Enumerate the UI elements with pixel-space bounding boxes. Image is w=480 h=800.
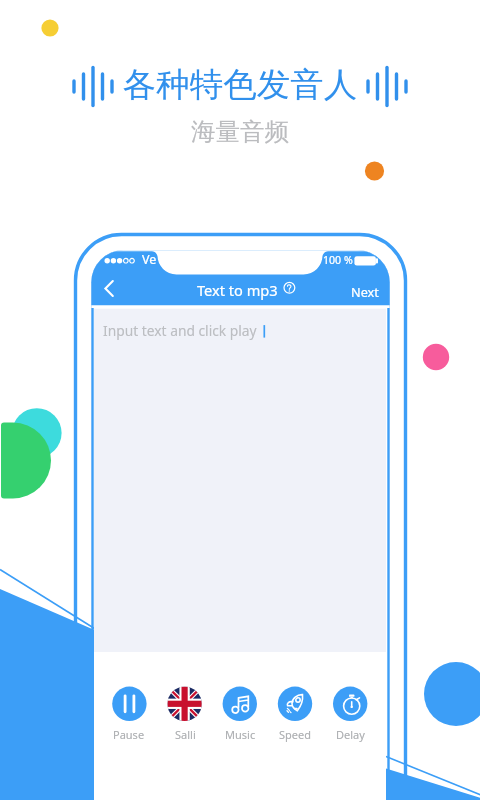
button[interactable]: Help	[281, 279, 299, 297]
staticText: 海量音频	[0, 116, 480, 147]
staticText: Music	[225, 727, 256, 742]
button[interactable]: Back	[97, 276, 122, 301]
button[interactable]: Pause	[102, 686, 156, 742]
button[interactable]: Music	[213, 686, 267, 742]
staticText: 100 %	[323, 253, 353, 267]
staticText: Pause	[113, 727, 145, 742]
staticText: 各种特色发音人	[0, 64, 480, 106]
staticText: Input text and click play	[103, 321, 257, 340]
staticText: Salli	[175, 727, 196, 742]
staticText: Next	[351, 283, 379, 300]
staticText: Delay	[336, 727, 365, 742]
button[interactable]: Salli	[158, 686, 212, 742]
staticText: Text to mp3	[197, 280, 278, 300]
button[interactable]: Speed	[268, 686, 322, 742]
button[interactable]: Delay	[323, 686, 377, 742]
staticText: Speed	[279, 727, 311, 742]
button[interactable]: Next	[348, 281, 382, 302]
staticText: Ve	[142, 251, 157, 268]
